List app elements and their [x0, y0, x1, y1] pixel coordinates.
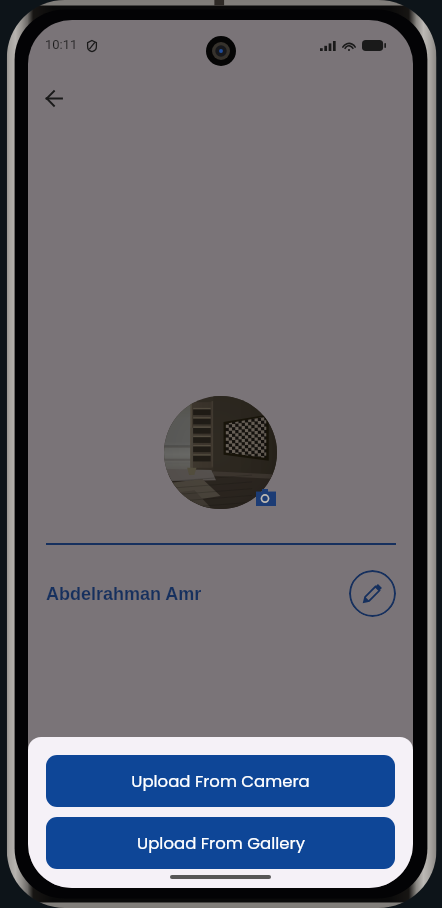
button[interactable]: Upload From Gallery	[46, 817, 395, 869]
staticText: Upload From Gallery	[137, 832, 305, 855]
staticText: 10:11	[45, 37, 78, 52]
button[interactable]: Back	[32, 76, 76, 120]
staticText: Abdelrahman Amr	[46, 584, 202, 604]
button[interactable]: Upload From Camera	[46, 755, 395, 807]
button[interactable]: Edit name	[349, 570, 396, 617]
staticText: Upload From Camera	[131, 770, 310, 793]
